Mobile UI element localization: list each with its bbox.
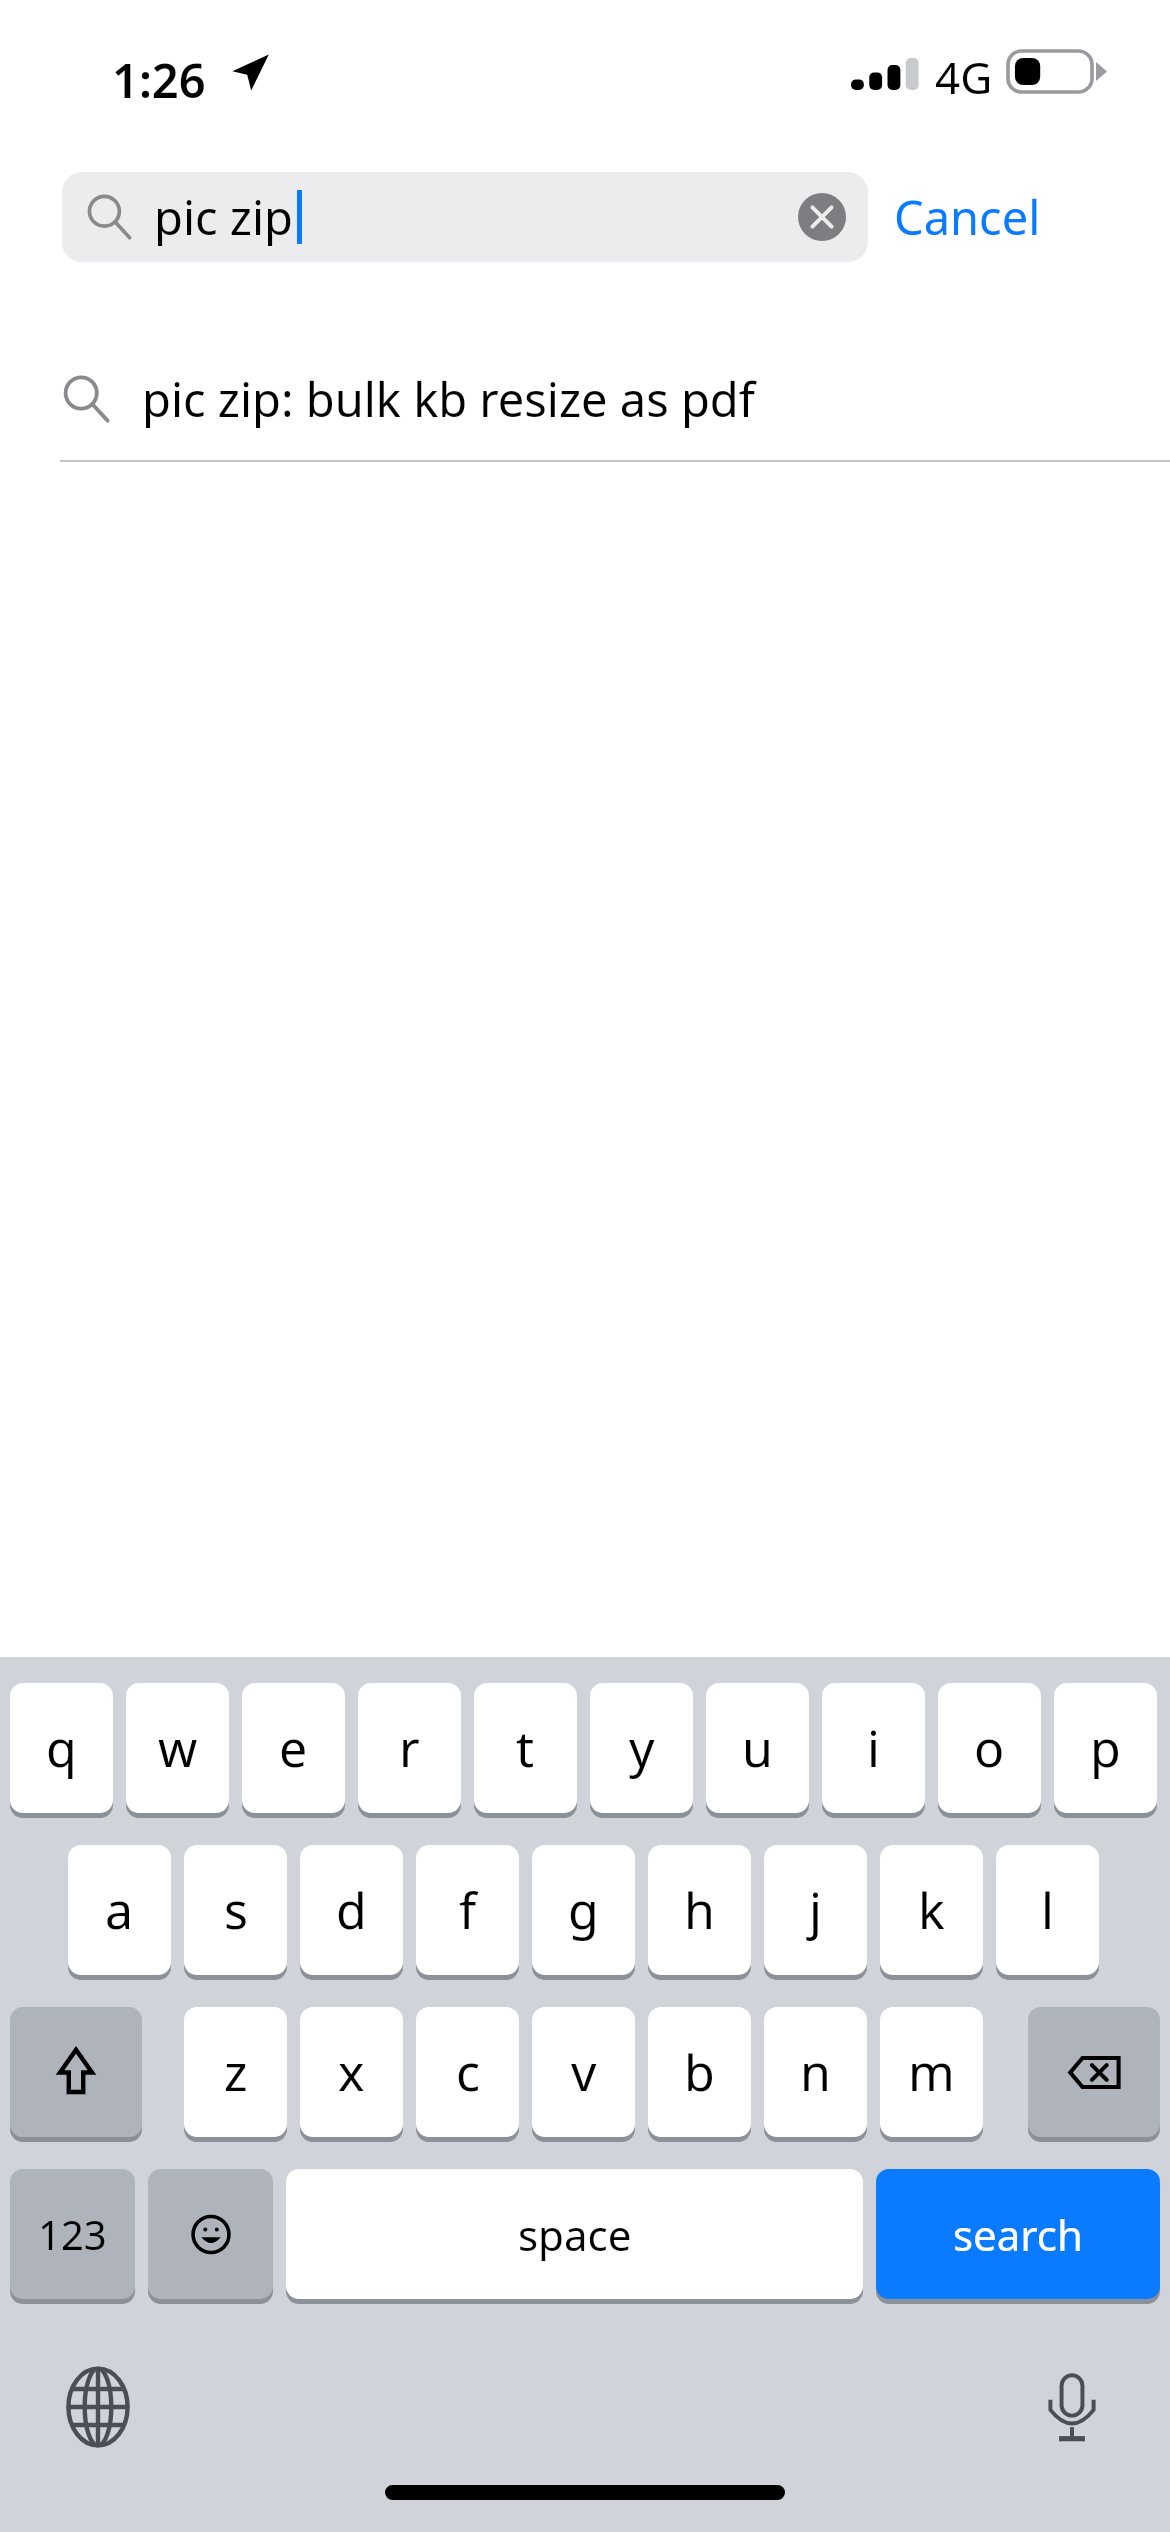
button[interactable]: g [532,1845,635,1975]
button[interactable]: m [880,2007,983,2137]
button[interactable]: c [416,2007,519,2137]
staticText: 4G [935,47,993,107]
button[interactable]: i [822,1683,925,1813]
button[interactable]: z [184,2007,287,2137]
staticText: e [279,1714,308,1782]
staticText: t [516,1714,535,1782]
button[interactable]: Switch keyboard [38,2347,158,2467]
button[interactable]: r [358,1683,461,1813]
staticText: 123 [38,2207,107,2261]
staticText: f [459,1876,477,1944]
button[interactable]: Dictate [1012,2347,1132,2467]
button[interactable]: h [648,1845,751,1975]
staticText: b [684,2038,715,2106]
staticText: z [224,2038,248,2106]
button[interactable]: q [10,1683,113,1813]
button[interactable]: pic zip: bulk kb resize as pdf [0,338,1170,460]
button[interactable]: t [474,1683,577,1813]
staticText: n [800,2038,831,2106]
button[interactable]: l [996,1845,1099,1975]
button[interactable]: Shift [10,2007,142,2137]
staticText: y [629,1714,655,1782]
staticText: h [684,1876,715,1944]
button[interactable]: d [300,1845,403,1975]
staticText: r [399,1714,420,1782]
staticText: i [867,1714,880,1782]
button[interactable]: Cancel [894,172,1041,262]
staticText: k [918,1876,945,1944]
button[interactable]: b [648,2007,751,2137]
button[interactable]: p [1054,1683,1157,1813]
staticText: q [46,1714,77,1782]
button[interactable]: Backspace [1028,2007,1160,2137]
button[interactable]: a [68,1845,171,1975]
button[interactable]: w [126,1683,229,1813]
staticText: pic zip [154,185,293,249]
button[interactable]: j [764,1845,867,1975]
button[interactable]: v [532,2007,635,2137]
staticText: x [338,2038,365,2106]
staticText: l [1041,1876,1054,1944]
button[interactable]: Emoji [148,2169,273,2299]
staticText: space [518,2206,632,2263]
staticText: Cancel [894,185,1041,249]
staticText: m [908,2038,955,2106]
button[interactable]: space [286,2169,863,2299]
button[interactable]: e [242,1683,345,1813]
button[interactable]: Clear text [798,193,846,241]
button[interactable]: pic zip [62,172,868,262]
button[interactable]: y [590,1683,693,1813]
button[interactable]: k [880,1845,983,1975]
button[interactable]: f [416,1845,519,1975]
button[interactable]: x [300,2007,403,2137]
staticText: p [1090,1714,1121,1782]
button[interactable]: n [764,2007,867,2137]
staticText: 1:26 [112,48,206,112]
button[interactable]: search [876,2169,1160,2299]
staticText: o [974,1714,1005,1782]
staticText: d [336,1876,367,1944]
staticText: search [953,2206,1083,2263]
staticText: j [809,1876,822,1944]
button[interactable]: s [184,1845,287,1975]
button[interactable]: 123 [10,2169,135,2299]
staticText: v [571,2038,597,2106]
staticText: w [158,1714,198,1782]
staticText: a [105,1876,134,1944]
staticText: pic zip: bulk kb resize as pdf [142,367,755,431]
staticText: c [456,2038,480,2106]
button[interactable]: u [706,1683,809,1813]
staticText: s [224,1876,248,1944]
button[interactable]: o [938,1683,1041,1813]
staticText: u [742,1714,773,1782]
staticText: g [568,1876,599,1944]
